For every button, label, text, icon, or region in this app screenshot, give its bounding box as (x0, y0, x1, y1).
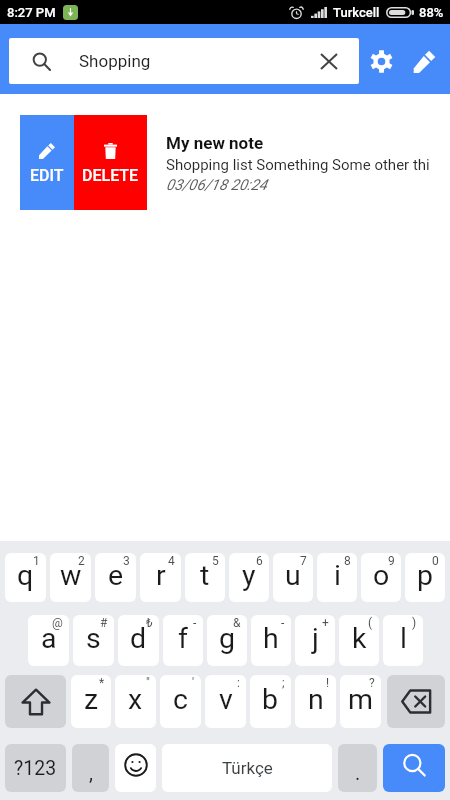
staticText: + (322, 616, 329, 630)
staticText: m (348, 683, 373, 716)
staticText: 0 (432, 554, 439, 568)
button[interactable]: b (250, 675, 291, 728)
button[interactable]: Emoji (115, 744, 156, 792)
staticText: u (285, 559, 301, 592)
staticText: c (173, 683, 188, 716)
button[interactable]: Backspace (387, 675, 445, 728)
staticText: ₺ (146, 616, 153, 630)
staticText: Türkçe (222, 758, 273, 778)
staticText: h (263, 622, 279, 655)
button[interactable]: Clear search (299, 38, 359, 84)
staticText: i (334, 559, 341, 592)
button[interactable]: j (295, 615, 335, 666)
staticText: b (262, 683, 279, 716)
button[interactable]: m (340, 675, 381, 728)
staticText: 6 (256, 554, 263, 568)
button[interactable]: EDIT (20, 115, 74, 210)
staticText: e (108, 559, 124, 592)
button[interactable]: k (339, 615, 379, 666)
staticText: z (84, 683, 99, 716)
button[interactable]: , (72, 744, 109, 792)
staticText: 3 (123, 554, 130, 568)
button[interactable]: Shift (5, 675, 66, 728)
staticText: ? (369, 676, 375, 690)
button[interactable]: o (361, 553, 401, 602)
staticText: 5 (212, 554, 219, 568)
staticText: & (233, 616, 241, 630)
button[interactable]: i (317, 553, 357, 602)
staticText: ( (368, 616, 373, 630)
staticText: ) (412, 616, 417, 630)
button[interactable]: s (73, 615, 114, 666)
button[interactable]: v (205, 675, 246, 728)
button[interactable]: n (295, 675, 336, 728)
staticText: x (128, 683, 143, 716)
button[interactable]: q (5, 553, 46, 602)
button[interactable]: r (140, 553, 181, 602)
button[interactable]: . (338, 744, 377, 792)
staticText: @ (52, 616, 63, 630)
button[interactable]: t (185, 553, 225, 602)
staticText: a (41, 622, 57, 655)
staticText: . (355, 761, 361, 784)
staticText: n (308, 683, 324, 716)
staticText: k (352, 622, 367, 655)
button[interactable]: c (160, 675, 201, 728)
button[interactable]: a (28, 615, 69, 666)
staticText: q (17, 559, 34, 592)
staticText: Turkcell (333, 5, 380, 20)
staticText: EDIT (30, 166, 64, 185)
button[interactable]: p (405, 553, 445, 602)
staticText: DELETE (82, 166, 139, 185)
staticText: j (312, 622, 319, 655)
button[interactable]: e (95, 553, 136, 602)
button[interactable]: x (115, 675, 156, 728)
staticText: 1 (33, 554, 40, 568)
staticText: - (281, 616, 285, 630)
staticText: 8 (344, 554, 351, 568)
staticText: ; (282, 676, 285, 690)
button[interactable]: f (163, 615, 203, 666)
staticText: My new note (166, 133, 264, 153)
button[interactable]: h (251, 615, 291, 666)
staticText: 2 (78, 554, 85, 568)
button[interactable]: ?123 (5, 744, 66, 792)
button[interactable]: y (229, 553, 269, 602)
button[interactable]: Shopping (9, 38, 359, 84)
button[interactable]: l (383, 615, 423, 666)
staticText: , (89, 761, 93, 784)
staticText: Shopping (79, 51, 151, 71)
staticText: ?123 (14, 757, 57, 780)
button[interactable]: z (71, 675, 111, 728)
button[interactable]: g (207, 615, 247, 666)
staticText: y (242, 559, 256, 592)
button[interactable]: My new note (166, 133, 450, 210)
staticText: # (100, 616, 108, 630)
staticText: - (193, 616, 197, 630)
button[interactable]: d (118, 615, 159, 666)
staticText: o (373, 559, 390, 592)
staticText: p (417, 559, 434, 592)
staticText: Shopping list Something Some other thi (166, 156, 430, 174)
button[interactable]: DELETE (74, 115, 147, 210)
button[interactable]: Settings (359, 38, 403, 84)
staticText: ' (192, 676, 195, 690)
button[interactable]: New note (403, 38, 445, 84)
staticText: " (146, 676, 150, 690)
staticText: g (219, 622, 236, 655)
button[interactable]: Search (383, 744, 445, 792)
staticText: 8:27 PM (7, 5, 56, 20)
staticText: w (60, 559, 82, 592)
staticText: ! (326, 676, 330, 690)
staticText: r (156, 559, 166, 592)
staticText: 9 (388, 554, 395, 568)
button[interactable]: u (273, 553, 313, 602)
staticText: d (130, 622, 147, 655)
staticText: 03/06/18 20:24 (166, 176, 268, 194)
staticText: 4 (168, 554, 175, 568)
staticText: t (200, 559, 210, 592)
button[interactable]: w (50, 553, 91, 602)
button[interactable]: Türkçe (162, 744, 332, 792)
staticText: 7 (300, 554, 307, 568)
staticText: * (99, 676, 105, 690)
